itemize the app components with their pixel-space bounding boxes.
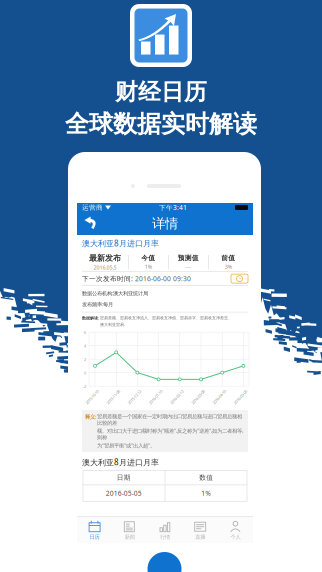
staticText: 今值 [141,254,155,262]
button[interactable]: 行情 [147,517,183,543]
staticText: 2016-02-12 [168,394,186,400]
staticText: 新闻 [125,534,135,540]
staticText: 2015-12-12 [125,394,143,400]
staticText: 下一次发布时间: [82,274,133,283]
staticText: 澳大利亚8月进口月率 [82,457,159,467]
button[interactable]: 个人 [218,517,253,543]
staticText: 数据解读: [82,315,99,321]
button[interactable]: 设置提醒 [231,274,248,283]
staticText: 3% [225,263,232,270]
staticText: 日历 [90,534,100,540]
staticText: 1% [201,489,211,498]
staticText: 2016.05.5 [93,264,116,271]
staticText: 6 [84,330,86,335]
staticText: 2015-10-10 [83,394,101,400]
staticText: 额。对出口大于进口额时称为"顺差",反之称为"逆差",如为二者相等,则称 [97,427,243,441]
staticText: 直播 [195,534,205,540]
staticText: 4 [84,343,86,348]
staticText: 2016-06-00 09:30 [135,274,191,283]
staticText: 个人 [230,534,240,540]
staticText: 财经日历 [115,78,207,106]
staticText: 全球数据实时解读 [65,109,257,139]
staticText: 2016-05-05 [231,394,249,400]
staticText: 2016-04-10 [210,394,228,400]
staticText: --- [185,263,191,270]
staticText: 下午3:41 [159,203,187,212]
staticText: 0 [84,370,86,375]
staticText: -2 [83,384,86,389]
staticText: 1% [145,263,152,270]
staticText: 发布频率:每月 [82,301,113,308]
staticText: 最新发布 [89,253,121,263]
staticText: 数据公布机构:澳大利亚统计局 [82,290,148,297]
staticText: 详情 [152,215,178,232]
staticText: 前值 [221,254,235,262]
staticText: 2016-05-05 [106,489,142,498]
button[interactable]: 返回 [82,212,104,234]
staticText: 2 [84,357,86,362]
staticText: 澳大利亚贸易. [100,322,125,327]
staticText: 贸易差额、贸易收支净流入、贸易收支净值、贸易赤字、贸易收支净差交、 [100,315,232,320]
staticText: 贸易差额是一个国家在一定时期内出口贸易总额与进口贸易总额相比较的差 [97,413,242,426]
staticText: 日期 [117,473,131,482]
staticText: 2016-03-08 [189,394,207,400]
staticText: 运营商 [82,203,105,212]
staticText: 预测值 [178,254,199,262]
button[interactable]: 直播 [183,517,218,543]
staticText: 行情 [160,534,170,540]
staticText: 2015-11-08 [104,394,122,400]
staticText: 释义: [85,413,96,420]
staticText: 澳大利亚8月进口月率 [82,238,159,249]
button[interactable]: 日历 [77,517,112,543]
staticText: 为"贸易平衡"或"出入超"。 [97,442,155,449]
staticText: 2016-01-10 [147,394,165,400]
staticText: 数值 [199,473,213,482]
button[interactable]: 新闻 [112,517,147,543]
